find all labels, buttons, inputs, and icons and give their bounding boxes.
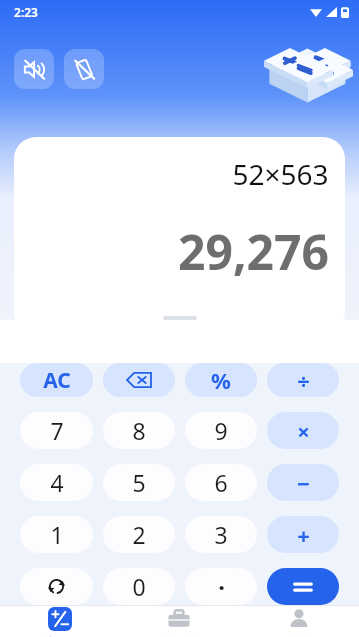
button[interactable]: 6 xyxy=(185,464,257,501)
staticText: − xyxy=(297,468,310,498)
staticText: 2:23 xyxy=(14,4,38,20)
button[interactable]: Switch xyxy=(20,568,93,605)
staticText: AC xyxy=(43,366,71,395)
button[interactable]: AC xyxy=(20,363,93,397)
button[interactable]: − xyxy=(267,464,339,501)
staticText: · xyxy=(218,570,225,603)
staticText: 6 xyxy=(214,467,228,498)
button[interactable]: Mute sound xyxy=(14,49,54,89)
button[interactable]: 5 xyxy=(103,464,175,501)
button[interactable]: × xyxy=(267,412,339,449)
staticText: 5 xyxy=(132,467,146,498)
staticText: 3 xyxy=(214,519,228,550)
staticText: 计算器 xyxy=(43,635,76,637)
staticText: 2 xyxy=(132,519,146,550)
button[interactable]: 工具箱 xyxy=(119,606,239,637)
button[interactable]: 计算器 xyxy=(0,606,119,637)
button[interactable]: 1 xyxy=(20,516,93,553)
staticText: 29,276 xyxy=(178,219,329,284)
staticText: + xyxy=(297,520,310,550)
staticText: ÷ xyxy=(297,365,310,395)
button[interactable]: 我的 xyxy=(239,606,359,637)
button[interactable]: Backspace xyxy=(103,363,175,397)
button[interactable]: 9 xyxy=(185,412,257,449)
staticText: % xyxy=(211,365,231,395)
button[interactable]: 2 xyxy=(103,516,175,553)
button[interactable]: Equals xyxy=(267,568,339,605)
staticText: 4 xyxy=(50,467,64,498)
staticText: 0 xyxy=(132,571,146,602)
staticText: 9 xyxy=(214,415,228,446)
staticText: 52×563 xyxy=(232,155,329,193)
button[interactable]: + xyxy=(267,516,339,553)
button[interactable]: 3 xyxy=(185,516,257,553)
button[interactable]: % xyxy=(185,363,257,397)
staticText: 1 xyxy=(50,519,64,550)
button[interactable]: 7 xyxy=(20,412,93,449)
button[interactable]: ÷ xyxy=(267,363,339,397)
staticText: 8 xyxy=(132,415,146,446)
staticText: 7 xyxy=(50,415,64,446)
button[interactable]: 4 xyxy=(20,464,93,501)
button[interactable]: 0 xyxy=(103,568,175,605)
button[interactable]: 8 xyxy=(103,412,175,449)
staticText: × xyxy=(297,416,310,446)
button[interactable]: Vibration off xyxy=(64,49,104,89)
button[interactable]: · xyxy=(185,568,257,605)
